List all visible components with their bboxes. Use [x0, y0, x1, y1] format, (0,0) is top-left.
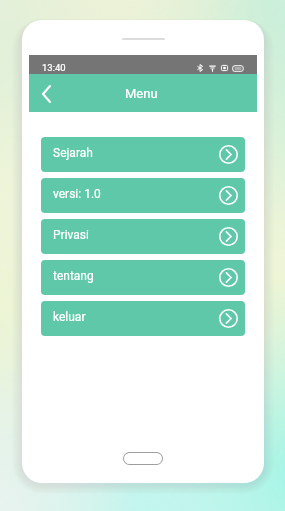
staticText: Privasi	[53, 228, 89, 242]
button[interactable]: keluar	[41, 301, 245, 336]
staticText: tentang	[53, 269, 94, 283]
staticText: keluar	[53, 310, 86, 324]
button[interactable]: Home	[123, 452, 163, 465]
staticText: Menu	[125, 86, 158, 101]
button[interactable]: Privasi	[41, 219, 245, 254]
button[interactable]: versi: 1.0	[41, 178, 245, 213]
staticText: 13:40	[42, 62, 66, 73]
button[interactable]: Sejarah	[41, 137, 245, 172]
button[interactable]: tentang	[41, 260, 245, 295]
staticText: versi: 1.0	[53, 187, 101, 201]
button[interactable]: Back	[29, 74, 63, 112]
staticText: Sejarah	[53, 146, 93, 160]
